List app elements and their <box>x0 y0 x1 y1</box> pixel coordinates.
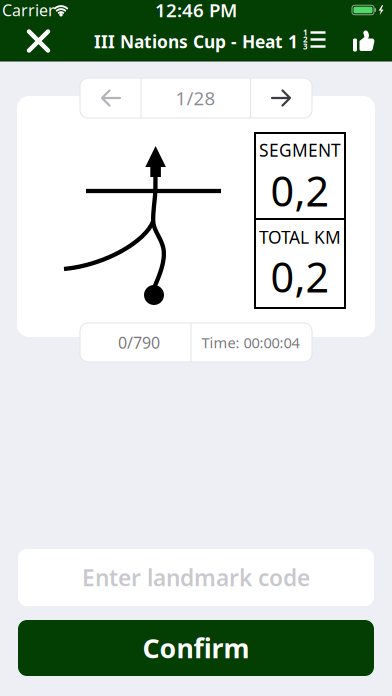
button[interactable]: Roadbook list <box>302 29 328 50</box>
staticText: 0/790 <box>118 332 160 353</box>
staticText: III Nations Cup - Heat 1 <box>94 30 298 53</box>
staticText: 3 <box>303 41 308 52</box>
staticText: SEGMENT <box>259 138 341 161</box>
button[interactable]: Like <box>351 29 377 52</box>
staticText: Carrier <box>2 0 55 21</box>
button[interactable]: Next instruction <box>251 78 312 118</box>
staticText: 0,2 <box>270 249 329 304</box>
staticText: Time: 00:00:04 <box>201 333 299 352</box>
staticText: 12:46 PM <box>155 0 237 22</box>
button[interactable]: Close <box>16 22 60 59</box>
staticText: 2 <box>303 34 308 45</box>
staticText: Confirm <box>142 630 249 666</box>
button[interactable]: Confirm <box>18 620 374 676</box>
button[interactable]: Enter landmark code <box>18 549 374 606</box>
staticText: 0,2 <box>270 163 329 218</box>
staticText: TOTAL KM <box>259 225 341 248</box>
staticText: 1 <box>303 27 308 38</box>
staticText: 1/28 <box>175 86 215 110</box>
button[interactable]: Previous instruction <box>80 78 141 118</box>
staticText: Enter landmark code <box>82 562 310 592</box>
